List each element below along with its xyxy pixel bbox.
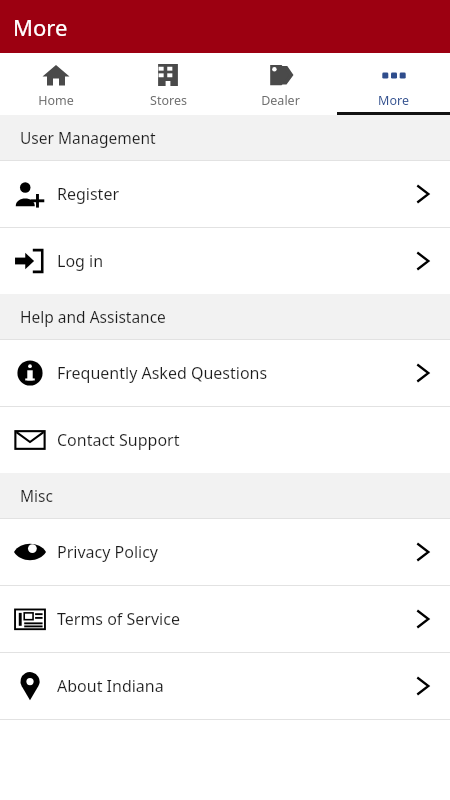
button[interactable]: Contact Support <box>0 407 450 473</box>
button[interactable]: About Indiana <box>0 653 450 719</box>
staticText: More <box>13 12 68 42</box>
button[interactable]: Privacy Policy <box>0 519 450 585</box>
button[interactable]: Frequently Asked Questions <box>0 340 450 406</box>
staticText: Register <box>57 183 408 205</box>
staticText: User Management <box>20 127 156 148</box>
staticText: More <box>378 92 409 109</box>
staticText: Dealer <box>261 92 300 109</box>
staticText: Home <box>38 92 74 109</box>
staticText: Terms of Service <box>57 608 408 630</box>
staticText: Privacy Policy <box>57 541 408 563</box>
button[interactable]: Dealer <box>224 53 337 115</box>
staticText: Log in <box>57 250 408 272</box>
button[interactable]: Register <box>0 161 450 227</box>
staticText: Help and Assistance <box>20 306 166 327</box>
button[interactable]: More <box>337 53 450 115</box>
button[interactable]: Terms of Service <box>0 586 450 652</box>
staticText: About Indiana <box>57 675 408 697</box>
staticText: Contact Support <box>57 429 408 451</box>
staticText: Stores <box>150 92 187 109</box>
staticText: Frequently Asked Questions <box>57 362 408 384</box>
button[interactable]: Stores <box>112 53 224 115</box>
staticText: Misc <box>20 485 53 506</box>
button[interactable]: Log in <box>0 228 450 294</box>
button[interactable]: Home <box>0 53 112 115</box>
